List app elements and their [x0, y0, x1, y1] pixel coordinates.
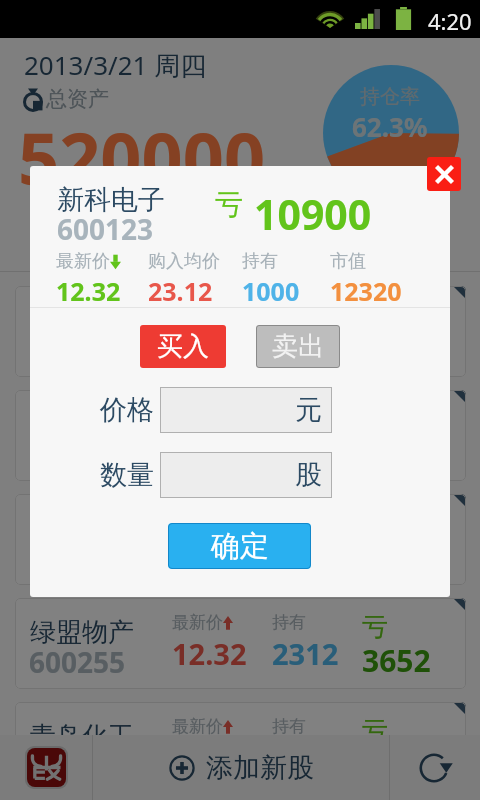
staticText: 1200 [272, 738, 339, 777]
staticText: 买入 [157, 330, 209, 363]
staticText: 520000 [18, 108, 266, 206]
staticText: 股 [295, 458, 322, 492]
staticText: 购入均价 [148, 250, 220, 273]
staticText: 价格 [100, 393, 154, 427]
staticText: 600888 [29, 747, 126, 785]
staticText: 1000 [272, 322, 339, 361]
staticText: 持有 [272, 612, 306, 633]
staticText: 62.3% [352, 109, 428, 144]
button[interactable]: 新科电子 [15, 286, 466, 377]
staticText: 确定 [211, 528, 269, 565]
staticText: 最新价 [56, 250, 110, 273]
staticText: 亏 [362, 611, 388, 644]
staticText: 600255 [29, 643, 126, 681]
staticText: 持有 [272, 716, 306, 737]
staticText: 12.32 [56, 274, 121, 308]
staticText: 绿盟物产 [30, 616, 134, 649]
staticText: 持有 [242, 250, 278, 273]
staticText: 持仓率 [360, 84, 420, 109]
staticText: 最新价 [172, 508, 223, 529]
button[interactable]: 买入 [140, 325, 226, 368]
staticText: 持有 [272, 508, 306, 529]
staticText: 北方创业 [30, 408, 134, 441]
staticText: 600776 [29, 539, 126, 577]
staticText: 数量 [100, 458, 154, 492]
staticText: 3652 [362, 640, 431, 681]
staticText: 10900 [254, 186, 372, 242]
staticText: 持有 [272, 404, 306, 425]
staticText: 12.32 [172, 322, 247, 361]
staticText: 800 [272, 530, 322, 569]
staticText: 新科电子 [57, 183, 165, 217]
staticText: 600123 [57, 210, 154, 248]
staticText: 8.51 [172, 426, 230, 465]
staticText: 4:20 [428, 6, 472, 36]
staticText: 最新价 [172, 716, 223, 737]
button[interactable]: App home [0, 735, 92, 800]
staticText: 市值 [330, 250, 366, 273]
button[interactable]: 股 [160, 452, 332, 498]
staticText: 12320 [330, 274, 402, 308]
staticText: 600456 [29, 435, 126, 473]
button[interactable]: 东方通信 [15, 494, 466, 585]
staticText: 23.12 [148, 274, 213, 308]
staticText: 最新价 [172, 612, 223, 633]
staticText: 最新价 [172, 300, 223, 321]
staticText: 新科电子 [30, 304, 134, 337]
button[interactable]: Refresh [390, 735, 480, 800]
button[interactable]: Close [427, 157, 461, 191]
button[interactable]: 元 [160, 387, 332, 433]
button[interactable]: 绿盟物产 [15, 598, 466, 689]
button[interactable]: 添加新股 [93, 735, 389, 800]
staticText: 元 [295, 393, 322, 427]
button[interactable]: 青岛化工 [15, 702, 466, 793]
staticText: 亏 [362, 299, 388, 332]
button[interactable]: 北方创业 [15, 390, 466, 481]
staticText: 添加新股 [206, 751, 314, 785]
staticText: 500 [272, 426, 322, 465]
staticText: 600123 [29, 331, 126, 369]
staticText: 青岛化工 [30, 720, 134, 753]
staticText: 9.14 [172, 738, 230, 777]
staticText: 总资产 [46, 86, 109, 112]
staticText: 2312 [272, 634, 339, 673]
staticText: 2013/3/21 周四 [24, 47, 207, 83]
staticText: 亏 [362, 715, 388, 748]
staticText: 12.32 [172, 634, 247, 673]
staticText: 2200 [362, 744, 431, 785]
staticText: 持有 [272, 300, 306, 321]
staticText: 1000 [242, 274, 300, 308]
button[interactable]: 确定 [168, 523, 311, 569]
staticText: 卖出 [272, 330, 324, 363]
staticText: 15.20 [172, 530, 247, 569]
staticText: 亏 [215, 187, 243, 222]
button[interactable]: 卖出 [256, 325, 340, 368]
